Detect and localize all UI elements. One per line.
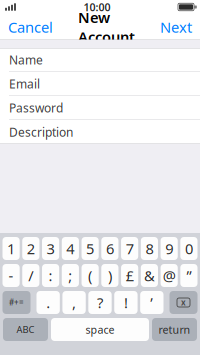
staticText: return bbox=[158, 322, 190, 337]
staticText: 1 bbox=[7, 239, 15, 258]
button[interactable]: , bbox=[62, 291, 86, 314]
button[interactable]: 5 bbox=[81, 237, 99, 260]
staticText: 7 bbox=[126, 239, 134, 258]
staticText: 3 bbox=[47, 239, 55, 258]
staticText: #+= bbox=[9, 297, 24, 308]
button[interactable]: 4 bbox=[62, 237, 79, 260]
button[interactable]: 0 bbox=[180, 237, 197, 260]
button[interactable]: Description bbox=[0, 120, 200, 144]
staticText: 10:00 bbox=[83, 0, 110, 14]
button[interactable]: Name bbox=[0, 48, 200, 72]
staticText: Name bbox=[9, 52, 43, 68]
staticText: ( bbox=[88, 266, 92, 285]
button[interactable]: £ bbox=[121, 264, 138, 287]
staticText: - bbox=[9, 266, 14, 285]
staticText: 0 bbox=[185, 239, 193, 258]
button[interactable]: ’ bbox=[140, 291, 163, 314]
button[interactable]: 3 bbox=[42, 237, 59, 260]
staticText: ? bbox=[97, 293, 103, 312]
staticText: : bbox=[49, 266, 53, 285]
button[interactable]: Next bbox=[152, 11, 200, 43]
button[interactable]: ; bbox=[62, 264, 79, 287]
button[interactable]: 6 bbox=[101, 237, 118, 260]
button[interactable]: / bbox=[22, 264, 39, 287]
staticText: & bbox=[144, 266, 155, 285]
staticText: New Account bbox=[78, 7, 135, 46]
button[interactable]: 7 bbox=[121, 237, 138, 260]
staticText: Cancel bbox=[8, 17, 53, 37]
staticText: @ bbox=[163, 266, 176, 285]
button[interactable]: ABC bbox=[3, 318, 48, 341]
button[interactable]: 1 bbox=[2, 237, 20, 260]
button[interactable]: Email bbox=[0, 72, 200, 96]
button[interactable]: 8 bbox=[141, 237, 158, 260]
staticText: ) bbox=[108, 266, 112, 285]
button[interactable]: return bbox=[152, 318, 197, 341]
staticText: ABC bbox=[16, 323, 34, 336]
staticText: 9 bbox=[165, 239, 173, 258]
staticText: . bbox=[46, 293, 50, 312]
button[interactable]: ! bbox=[114, 291, 138, 314]
staticText: 4 bbox=[66, 239, 74, 258]
staticText: 8 bbox=[145, 239, 153, 258]
button[interactable]: . bbox=[36, 291, 60, 314]
staticText: Next bbox=[160, 17, 192, 37]
button[interactable]: Password bbox=[0, 96, 200, 120]
button[interactable]: : bbox=[42, 264, 59, 287]
staticText: ! bbox=[124, 293, 128, 312]
staticText: Description bbox=[9, 124, 73, 140]
button[interactable]: space bbox=[51, 318, 149, 341]
staticText: , bbox=[72, 293, 76, 312]
staticText: space bbox=[85, 322, 114, 337]
staticText: x bbox=[181, 297, 186, 308]
button[interactable]: Delete bbox=[169, 291, 197, 314]
button[interactable]: ( bbox=[81, 264, 99, 287]
button[interactable]: ? bbox=[88, 291, 112, 314]
button[interactable]: #+= bbox=[2, 291, 30, 314]
staticText: Email bbox=[9, 76, 40, 92]
button[interactable]: 2 bbox=[22, 237, 39, 260]
staticText: ; bbox=[68, 266, 72, 285]
staticText: £ bbox=[126, 266, 134, 285]
staticText: 6 bbox=[106, 239, 114, 258]
staticText: ” bbox=[186, 266, 191, 285]
staticText: 2 bbox=[27, 239, 35, 258]
button[interactable]: 9 bbox=[161, 237, 178, 260]
staticText: / bbox=[28, 266, 33, 285]
staticText: 5 bbox=[86, 239, 94, 258]
staticText: ’ bbox=[150, 293, 153, 312]
button[interactable]: & bbox=[141, 264, 158, 287]
button[interactable]: @ bbox=[161, 264, 178, 287]
button[interactable]: ) bbox=[101, 264, 118, 287]
button[interactable]: - bbox=[2, 264, 20, 287]
button[interactable]: ” bbox=[180, 264, 197, 287]
staticText: Password bbox=[9, 100, 63, 116]
button[interactable]: Cancel bbox=[0, 11, 61, 43]
